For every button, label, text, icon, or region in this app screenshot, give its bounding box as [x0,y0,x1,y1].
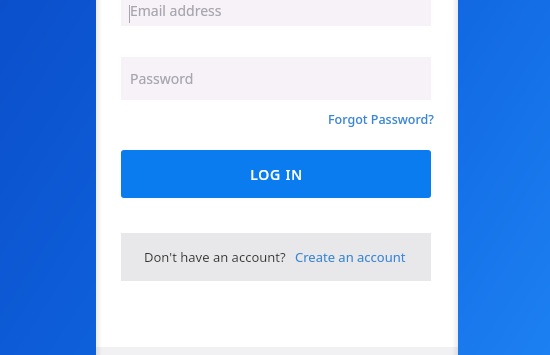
staticText: Forgot Password? [328,111,434,128]
staticText: LOG IN [250,165,303,184]
button[interactable]: Forgot Password? [326,108,436,131]
staticText: Email address [130,1,222,20]
button[interactable]: Create an account [293,244,408,270]
staticText: Create an account [295,248,406,266]
button[interactable]: Email address [121,0,431,26]
button[interactable]: LOG IN [121,150,431,198]
staticText: Don't have an account? [144,248,286,266]
button[interactable]: Password [121,57,431,100]
staticText: Password [130,69,194,88]
